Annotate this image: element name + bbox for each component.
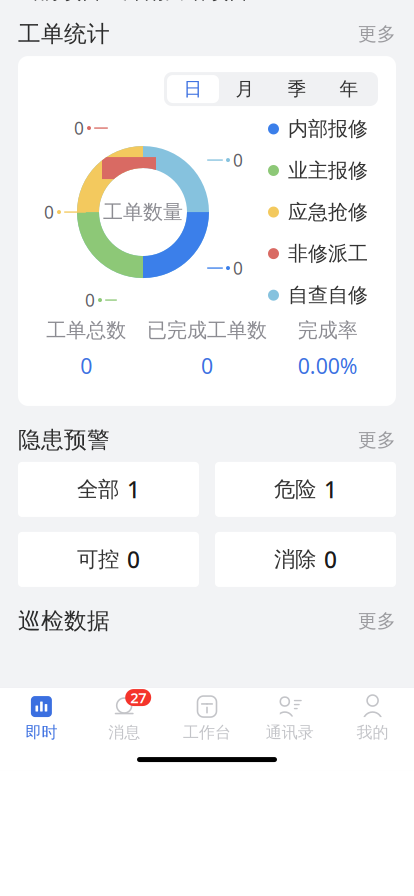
staticText: 已完成工单数 <box>147 318 267 343</box>
button[interactable]: 消除 <box>215 532 396 587</box>
button[interactable]: 更多 <box>348 422 396 457</box>
staticText: 0 <box>44 200 54 223</box>
staticText: 0 <box>127 544 140 574</box>
staticText: 更多 <box>358 428 396 451</box>
staticText: 业主报修 <box>288 158 368 183</box>
button[interactable]: 季 <box>271 75 323 103</box>
button[interactable]: 年 <box>323 75 375 103</box>
staticText: 隐患预警 <box>18 426 110 454</box>
button[interactable]: 全部 <box>18 462 199 517</box>
staticText: 非修派工 <box>288 241 368 266</box>
staticText: 月 <box>235 78 254 100</box>
staticText: 更多 <box>358 609 396 632</box>
staticText: 0 <box>233 256 243 279</box>
staticText: 通讯录 <box>266 723 314 742</box>
staticText: 季 <box>287 78 306 100</box>
button[interactable]: 我的 <box>331 695 414 742</box>
staticText: 完成率 <box>298 318 358 343</box>
button[interactable]: 27 <box>83 695 166 742</box>
staticText: 1 <box>127 474 140 504</box>
staticText: 我的 <box>357 723 389 742</box>
staticText: 日 <box>183 78 202 100</box>
staticText: 全部 <box>77 476 119 502</box>
staticText: 工作台 <box>183 723 231 742</box>
staticText: 0 <box>233 148 243 171</box>
staticText: 工单总数 <box>46 318 126 343</box>
staticText: 可控 <box>77 546 119 572</box>
staticText: 即时 <box>25 723 57 742</box>
button[interactable]: 更多 <box>348 17 396 51</box>
button[interactable]: 通讯录 <box>248 695 331 742</box>
staticText: 当前项目：浑南白塔项目 <box>18 0 249 4</box>
staticText: 0.00% <box>298 352 358 380</box>
staticText: 更多 <box>358 23 396 45</box>
staticText: 1 <box>324 474 337 504</box>
staticText: 自查自修 <box>288 283 368 307</box>
button[interactable]: 工作台 <box>166 695 248 742</box>
staticText: 27 <box>130 688 146 707</box>
button[interactable]: 日 <box>167 75 219 103</box>
button[interactable]: 即时 <box>0 695 83 742</box>
staticText: 危险 <box>274 476 316 502</box>
button[interactable]: 更多 <box>348 603 396 638</box>
staticText: 工单统计 <box>18 20 110 48</box>
button[interactable]: 月 <box>219 75 271 103</box>
staticText: 工单数量 <box>103 200 183 224</box>
staticText: 消除 <box>274 546 316 572</box>
staticText: 0 <box>85 288 95 311</box>
staticText: 0 <box>324 544 337 574</box>
staticText: 消息 <box>108 723 140 742</box>
staticText: 年 <box>339 78 358 100</box>
button[interactable]: 可控 <box>18 532 199 587</box>
staticText: 巡检数据 <box>18 607 110 635</box>
staticText: 0 <box>80 352 92 380</box>
button[interactable]: 危险 <box>215 462 396 517</box>
staticText: 应急抢修 <box>288 200 368 224</box>
staticText: 内部报修 <box>288 117 368 141</box>
staticText: 0 <box>74 116 84 139</box>
staticText: 0 <box>201 352 213 380</box>
